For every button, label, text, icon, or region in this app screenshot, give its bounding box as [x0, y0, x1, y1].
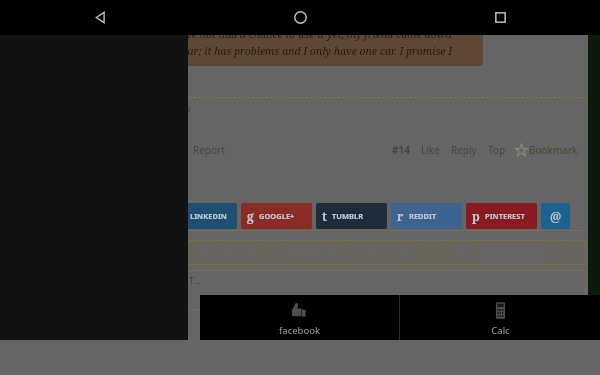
staticText: Calc	[491, 324, 510, 337]
staticText: @	[550, 208, 562, 224]
button[interactable]: image	[370, 244, 387, 261]
button[interactable]: t	[316, 203, 387, 229]
staticText: en helping me with my car; it has proble…	[70, 44, 453, 58]
staticText: and it is a nice saw. I have not had a c…	[70, 27, 452, 41]
button[interactable]: save	[424, 244, 441, 261]
staticText: Reply	[451, 143, 477, 157]
button[interactable]: unlink	[242, 244, 259, 261]
button[interactable]: ul	[282, 244, 299, 261]
staticText: PINTEREST	[485, 211, 525, 221]
button[interactable]: Report	[193, 143, 225, 157]
button[interactable]: Top	[488, 143, 506, 157]
button[interactable]: Back	[0, 0, 200, 35]
button[interactable]: Bookmark	[515, 143, 578, 157]
button[interactable]: undo	[444, 244, 461, 261]
staticText: LINKEDIN	[190, 211, 227, 221]
button[interactable]: A	[188, 244, 205, 261]
button[interactable]: full	[565, 244, 582, 261]
button[interactable]: g	[241, 203, 312, 229]
staticText: r	[397, 208, 404, 224]
button[interactable]: in	[333, 244, 350, 261]
staticText: Report	[193, 143, 225, 157]
staticText: facebook	[279, 324, 320, 337]
button[interactable]: align	[262, 244, 279, 261]
button[interactable]: A	[205, 244, 222, 261]
button[interactable]: p	[466, 203, 537, 229]
button[interactable]: Like	[421, 143, 440, 157]
button[interactable]: redo	[461, 244, 478, 261]
staticText: p	[472, 208, 480, 224]
button[interactable]: Calc	[400, 295, 600, 340]
staticText: GOOGLE+	[259, 211, 295, 221]
staticText: g	[247, 208, 254, 224]
button[interactable]: media	[387, 244, 404, 261]
staticText: TUMBLR	[332, 211, 364, 221]
staticText: T...	[189, 274, 201, 286]
button[interactable]: out	[316, 244, 333, 261]
button[interactable]: r	[391, 203, 462, 229]
staticText: t	[322, 208, 327, 224]
button[interactable]: Recent apps	[400, 0, 600, 35]
staticText: REDDIT	[409, 211, 437, 221]
button[interactable]: table	[404, 244, 421, 261]
button[interactable]: facebook	[200, 295, 399, 340]
staticText: #14	[392, 143, 410, 157]
staticText: Bookmark	[529, 143, 578, 157]
button[interactable]: @	[541, 203, 570, 229]
button[interactable]: ol	[299, 244, 316, 261]
button[interactable]: smiley	[353, 244, 370, 261]
staticText: unb	[172, 101, 191, 115]
button[interactable]: Home	[200, 0, 400, 35]
button[interactable]: Tx	[545, 244, 562, 261]
button[interactable]: in	[166, 203, 237, 229]
staticText: Top	[488, 143, 506, 157]
button[interactable]: Reply	[451, 143, 477, 157]
staticText: Like	[421, 143, 440, 157]
button[interactable]: link	[225, 244, 242, 261]
